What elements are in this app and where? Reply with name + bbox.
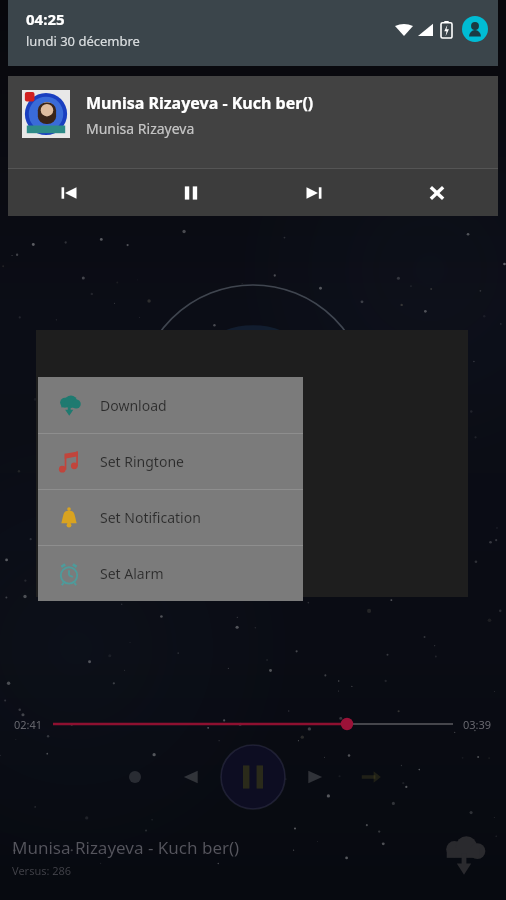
button[interactable]: Pause (130, 169, 252, 216)
button[interactable]: Previous track (167, 754, 213, 800)
staticText: Set Ringtone (100, 452, 184, 471)
button[interactable]: Download (38, 377, 303, 433)
staticText: Munisa Rizayeva - Kuch ber() (12, 836, 240, 859)
button[interactable]: Next track (293, 754, 339, 800)
staticText: Munisa Rizayeva (86, 119, 195, 138)
staticText: 03:39 (463, 717, 492, 732)
staticText: 04:25 (26, 9, 65, 29)
button[interactable]: Set Ringtone (38, 434, 303, 489)
staticText: lundi 30 décembre (26, 32, 140, 50)
button[interactable]: User account (462, 16, 488, 42)
button[interactable]: Close (375, 169, 498, 216)
button[interactable]: Seek bar (53, 713, 453, 735)
button[interactable]: Repeat (349, 755, 393, 799)
button[interactable]: Download (436, 826, 492, 882)
button[interactable]: Shuffle (113, 755, 157, 799)
button[interactable]: Pause (219, 743, 287, 811)
staticText: Set Notification (100, 508, 201, 527)
staticText: Versus: 286 (12, 863, 72, 878)
button[interactable]: Set Alarm (38, 546, 303, 601)
button[interactable]: Next (252, 169, 375, 216)
button[interactable]: Set Notification (38, 490, 303, 545)
staticText: Munisa Rizayeva - Kuch ber() (86, 92, 314, 114)
button[interactable]: Munisa Rizayeva - Kuch ber() (8, 76, 498, 168)
staticText: Set Alarm (100, 564, 164, 583)
staticText: Download (100, 396, 167, 415)
staticText: 02:41 (14, 717, 43, 732)
button[interactable]: Previous (8, 169, 130, 216)
